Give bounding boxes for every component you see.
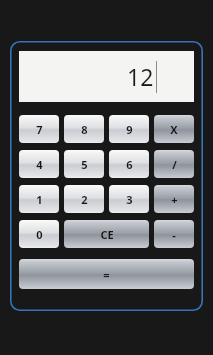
staticText: 4 (36, 157, 43, 172)
staticText: CE (100, 227, 114, 242)
staticText: 8 (81, 122, 88, 137)
staticText: 2 (81, 192, 88, 207)
staticText: + (171, 192, 178, 207)
button[interactable]: X (154, 115, 194, 143)
button[interactable]: 2 (64, 185, 104, 213)
button[interactable]: 6 (109, 150, 149, 178)
staticText: 0 (36, 227, 43, 242)
button[interactable]: CE (64, 220, 149, 248)
staticText: 12 (127, 61, 154, 92)
staticText: X (170, 122, 178, 137)
staticText: 1 (36, 192, 43, 207)
staticText: = (103, 267, 110, 282)
button[interactable]: 0 (19, 220, 59, 248)
button[interactable]: 7 (19, 115, 59, 143)
button[interactable]: 8 (64, 115, 104, 143)
button[interactable]: 4 (19, 150, 59, 178)
staticText: 5 (81, 157, 88, 172)
staticText: - (172, 227, 176, 242)
button[interactable]: - (154, 220, 194, 248)
staticText: / (172, 157, 177, 172)
staticText: 7 (36, 122, 43, 137)
button[interactable]: + (154, 185, 194, 213)
button[interactable]: 1 (19, 185, 59, 213)
button[interactable]: 3 (109, 185, 149, 213)
button[interactable]: 5 (64, 150, 104, 178)
staticText: 6 (126, 157, 133, 172)
button[interactable]: / (154, 150, 194, 178)
staticText: 9 (126, 122, 133, 137)
button[interactable]: 12 (19, 51, 194, 102)
button[interactable]: = (19, 259, 194, 289)
button[interactable]: 9 (109, 115, 149, 143)
staticText: 3 (126, 192, 133, 207)
